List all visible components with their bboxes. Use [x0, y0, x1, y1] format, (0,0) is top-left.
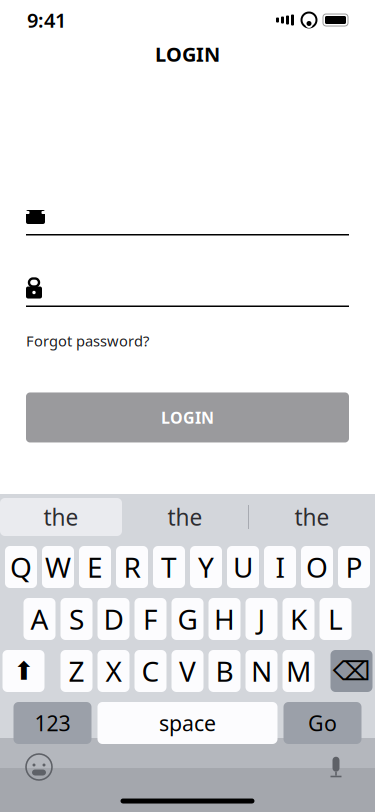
staticText: C: [141, 652, 159, 690]
button[interactable]: space: [97, 702, 277, 744]
button[interactable]: P: [338, 546, 370, 588]
staticText: Y: [198, 548, 214, 586]
button[interactable]: LOGIN: [26, 392, 349, 442]
staticText: space: [159, 709, 216, 737]
button[interactable]: Go: [283, 702, 361, 744]
button[interactable]: J: [245, 598, 277, 640]
staticText: W: [45, 548, 71, 586]
staticText: F: [143, 600, 158, 638]
button[interactable]: C: [134, 650, 166, 692]
button[interactable]: B: [208, 650, 240, 692]
staticText: Go: [308, 709, 337, 737]
staticText: the: [43, 502, 78, 532]
staticText: S: [69, 600, 84, 638]
button[interactable]: Dictation: [319, 750, 353, 784]
button[interactable]: E: [79, 546, 111, 588]
staticText: R: [123, 548, 140, 586]
staticText: A: [30, 600, 48, 638]
staticText: D: [103, 600, 123, 638]
staticText: J: [257, 600, 265, 638]
staticText: ⬆: [13, 657, 34, 685]
button[interactable]: O: [301, 546, 333, 588]
staticText: Forgot password?: [26, 331, 149, 350]
staticText: G: [177, 600, 197, 638]
staticText: the: [167, 502, 202, 532]
button[interactable]: L: [319, 598, 351, 640]
button[interactable]: Forgot password?: [26, 331, 149, 350]
staticText: 9:41: [27, 7, 66, 33]
staticText: U: [233, 548, 253, 586]
button[interactable]: U: [227, 546, 259, 588]
button[interactable]: Q: [5, 546, 37, 588]
button[interactable]: W: [42, 546, 74, 588]
staticText: M: [286, 652, 311, 690]
button[interactable]: 123: [13, 702, 91, 744]
button[interactable]: V: [171, 650, 203, 692]
staticText: ⌫: [332, 656, 370, 686]
staticText: O: [306, 548, 328, 586]
staticText: I: [275, 548, 284, 586]
button[interactable]: H: [208, 598, 240, 640]
button[interactable]: X: [97, 650, 129, 692]
button[interactable]: Delete: [330, 650, 372, 692]
staticText: LOGIN: [161, 407, 214, 428]
staticText: V: [179, 652, 196, 690]
button[interactable]: the: [122, 498, 248, 536]
button[interactable]: Y: [190, 546, 222, 588]
button[interactable]: R: [116, 546, 148, 588]
staticText: K: [290, 600, 307, 638]
staticText: E: [87, 548, 103, 586]
staticText: L: [328, 600, 343, 638]
button[interactable]: Emoji keyboard: [22, 750, 56, 784]
button[interactable]: S: [60, 598, 92, 640]
button[interactable]: Shift: [2, 650, 44, 692]
button[interactable]: D: [97, 598, 129, 640]
staticText: Z: [68, 652, 84, 690]
staticText: B: [215, 652, 233, 690]
staticText: T: [161, 548, 177, 586]
button[interactable]: the: [0, 498, 122, 536]
button[interactable]: K: [282, 598, 314, 640]
button[interactable]: Z: [60, 650, 92, 692]
staticText: Q: [10, 548, 32, 586]
staticText: N: [251, 652, 272, 690]
button[interactable]: A: [23, 598, 55, 640]
staticText: H: [214, 600, 235, 638]
staticText: P: [345, 548, 362, 586]
button[interactable]: I: [264, 546, 296, 588]
button[interactable]: M: [282, 650, 314, 692]
staticText: the: [294, 502, 329, 532]
button[interactable]: N: [245, 650, 277, 692]
button[interactable]: the: [249, 498, 375, 536]
staticText: 123: [34, 709, 70, 737]
staticText: X: [105, 652, 121, 690]
staticText: LOGIN: [155, 41, 220, 67]
button[interactable]: F: [134, 598, 166, 640]
button[interactable]: T: [153, 546, 185, 588]
button[interactable]: G: [171, 598, 203, 640]
